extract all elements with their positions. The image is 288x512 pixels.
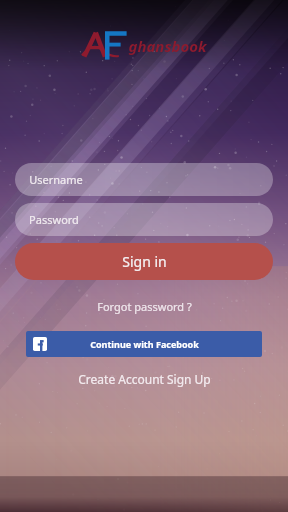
staticText: Password <box>29 212 79 227</box>
button[interactable]: Create Account Sign Up <box>70 368 219 390</box>
staticText: Username <box>29 172 83 187</box>
button[interactable]: Continue with Facebook <box>26 331 262 357</box>
button[interactable]: Username <box>15 163 273 196</box>
staticText: Continue with Facebook <box>90 338 199 350</box>
button[interactable]: Forgot password ? <box>89 296 200 317</box>
button[interactable]: Sign in <box>15 243 273 280</box>
staticText: Forgot password ? <box>97 299 192 314</box>
staticText: ghansbook <box>128 36 207 56</box>
staticText: Create Account Sign Up <box>78 371 211 387</box>
button[interactable]: Password <box>15 203 273 236</box>
staticText: Sign in <box>122 252 167 271</box>
